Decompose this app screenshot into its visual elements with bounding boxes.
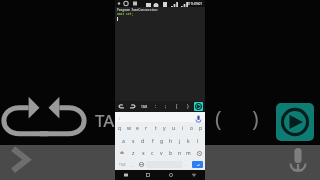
button[interactable]: Recents (137, 170, 159, 180)
button[interactable]: i (178, 122, 187, 135)
button[interactable]: ; (161, 101, 171, 112)
button[interactable]: k (184, 135, 193, 147)
staticText: u (172, 125, 176, 132)
button[interactable]: c (148, 147, 157, 159)
staticText: d (141, 138, 145, 145)
staticText: p (199, 125, 203, 132)
button[interactable]: Keyboard (115, 170, 137, 180)
staticText: ?123 (119, 163, 126, 167)
button[interactable]: ( (171, 101, 182, 112)
button[interactable]: d (138, 135, 148, 147)
staticText: ( (215, 103, 222, 133)
button[interactable]: q (115, 122, 124, 135)
button[interactable]: j (175, 135, 184, 147)
button[interactable]: ?123 (115, 159, 129, 170)
staticText: j (179, 138, 181, 145)
staticText: a (122, 138, 125, 145)
staticText: l (197, 138, 199, 145)
staticText: v (160, 150, 163, 157)
staticText: g (160, 138, 164, 145)
staticText: b (169, 150, 173, 157)
other: Language (139, 162, 144, 167)
staticText: , (132, 162, 134, 167)
button[interactable]: v (157, 147, 166, 159)
button[interactable]: e (133, 122, 142, 135)
staticText: ) (187, 103, 189, 110)
button[interactable]: Language (137, 159, 146, 170)
staticText: ) (252, 103, 259, 133)
button[interactable]: Back (182, 170, 205, 180)
button[interactable]: Backspace (193, 147, 205, 159)
staticText: f (152, 138, 154, 145)
button[interactable]: h (166, 135, 175, 147)
staticText: Program SomeConversion: (117, 8, 159, 12)
button[interactable]: ) (182, 101, 193, 112)
button[interactable]: r (142, 122, 151, 135)
button[interactable]: TAB (138, 101, 151, 112)
staticText: i (182, 125, 184, 132)
button[interactable]: Home (159, 170, 182, 180)
button[interactable]: Undo (116, 101, 127, 112)
button[interactable]: b (166, 147, 175, 159)
button[interactable]: m (184, 147, 193, 159)
button[interactable]: Enter (192, 161, 203, 168)
button[interactable]: g (157, 135, 166, 147)
button[interactable]: Shift (115, 147, 128, 159)
button[interactable]: : (151, 101, 161, 112)
staticText: q (118, 125, 122, 132)
staticText: TAB (95, 109, 126, 132)
other: Shift (120, 151, 124, 155)
button[interactable]: x (138, 147, 148, 159)
staticText: ; (119, 115, 121, 120)
staticText: e (136, 125, 139, 132)
button[interactable]: a (118, 135, 128, 147)
staticText: x (142, 150, 145, 157)
staticText: ( (176, 103, 178, 110)
staticText: h (169, 138, 173, 145)
button[interactable]: n (175, 147, 184, 159)
other: Backspace (197, 151, 202, 156)
staticText: r (145, 125, 148, 132)
staticText: y (163, 125, 166, 132)
button[interactable]: Run (194, 102, 203, 111)
staticText: n (178, 150, 182, 157)
staticText: ; (165, 103, 167, 110)
button[interactable]: p (196, 122, 205, 135)
button[interactable]: l (193, 135, 202, 147)
staticText: o (190, 125, 194, 132)
other: Voice input (196, 115, 201, 120)
staticText: t (155, 125, 157, 132)
staticText: w (127, 125, 131, 132)
staticText: TAB (141, 104, 148, 109)
button[interactable]: w (124, 122, 133, 135)
button[interactable]: s (128, 135, 138, 147)
staticText: . (185, 162, 187, 167)
staticText: uses crt; (117, 12, 134, 16)
button[interactable]: u (169, 122, 178, 135)
button[interactable]: , (129, 159, 137, 170)
staticText: s (132, 138, 135, 145)
button[interactable]: y (160, 122, 169, 135)
button[interactable]: t (151, 122, 160, 135)
staticText: : (155, 103, 157, 110)
button[interactable]: Run (276, 103, 314, 141)
button[interactable]: o (187, 122, 196, 135)
staticText: 41% 09:01 (187, 2, 203, 6)
staticText: m (186, 150, 191, 157)
staticText: c (151, 150, 154, 157)
staticText: k (187, 138, 190, 145)
button[interactable]: Redo (127, 101, 138, 112)
button[interactable]: f (148, 135, 157, 147)
button[interactable]: z (128, 147, 138, 159)
staticText: z (132, 150, 135, 157)
